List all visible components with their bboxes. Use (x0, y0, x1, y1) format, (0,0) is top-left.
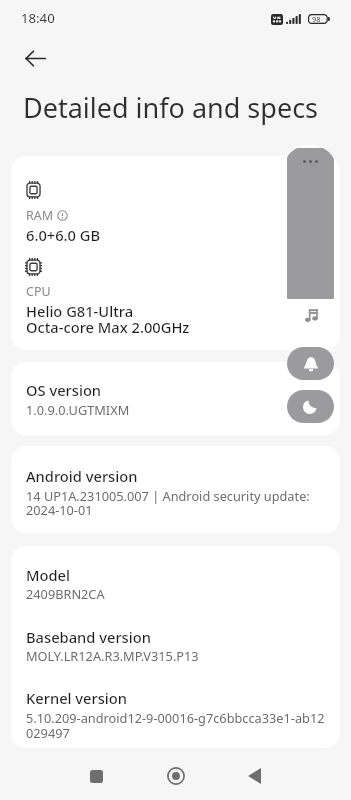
staticText: Octa-core Max 2.00GHz (26, 317, 190, 337)
staticText: RAM (26, 207, 54, 224)
staticText: 6.0+6.0 GB (26, 225, 101, 245)
button[interactable]: Back (232, 754, 276, 798)
staticText: Android version (26, 466, 138, 486)
staticText: Detailed info and specs (23, 89, 319, 126)
staticText: CPU (26, 283, 51, 300)
staticText: Baseband version (26, 627, 151, 647)
staticText: 1.0.9.0.UGTMIXM (26, 401, 130, 418)
staticText: 18:40 (21, 9, 55, 27)
button[interactable]: Do not disturb (287, 390, 334, 423)
staticText: MOLY.LR12A.R3.MP.V315.P13 (26, 647, 199, 664)
staticText: 2409BRN2CA (26, 585, 105, 602)
button[interactable]: OS version (11, 362, 340, 435)
button[interactable]: Model (11, 546, 340, 748)
staticText: Kernel version (26, 688, 128, 708)
button[interactable]: Back (16, 39, 55, 78)
button[interactable]: Android version (11, 446, 340, 533)
staticText: 14 UP1A.231005.007 | Android security up… (26, 487, 310, 504)
staticText: 2024-10-01 (26, 501, 93, 518)
staticText: OS version (26, 380, 102, 400)
staticText: 5.10.209-android12-9-00016-g7c6bbcca33e1… (26, 709, 325, 726)
staticText: Helio G81-Ultra (26, 301, 134, 321)
button[interactable]: Recents (74, 754, 118, 798)
staticText: 029497 (26, 724, 70, 741)
button[interactable]: Volume (283, 145, 337, 337)
staticText: 98 (312, 14, 321, 24)
staticText: Model (26, 565, 70, 585)
button[interactable]: Ring mode (287, 347, 334, 380)
button[interactable]: RAM (11, 156, 340, 350)
button[interactable]: Home (154, 754, 198, 798)
